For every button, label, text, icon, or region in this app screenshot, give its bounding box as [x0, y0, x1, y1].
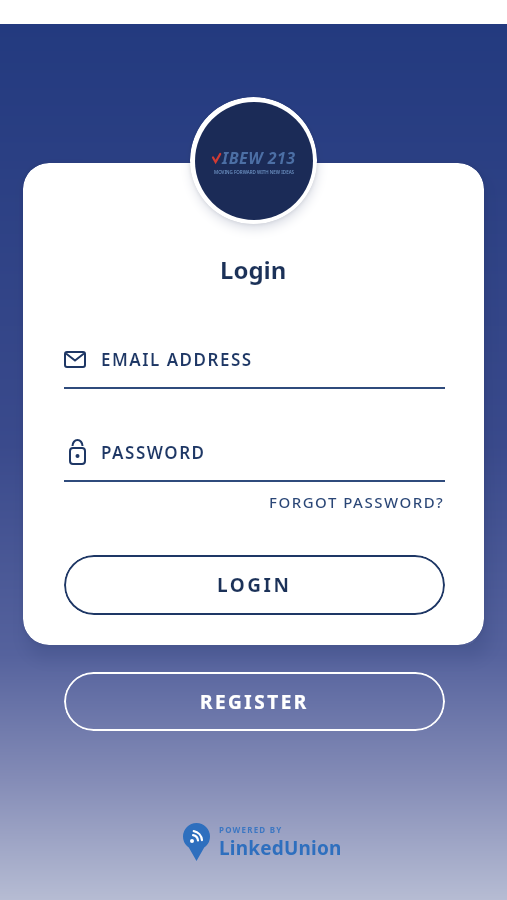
staticText: LinkedUnion [219, 835, 342, 861]
staticText: MOVING FORWARD WITH NEW IDEAS [214, 169, 295, 175]
staticText: IBEW 213 [222, 147, 296, 169]
staticText: LOGIN [217, 572, 292, 598]
staticText: Login [220, 253, 287, 286]
button[interactable]: FORGOT PASSWORD? [269, 492, 445, 512]
staticText: REGISTER [200, 689, 309, 715]
staticText: EMAIL ADDRESS [101, 348, 253, 371]
button[interactable]: POWERED BY [183, 823, 342, 861]
button[interactable]: PASSWORD [64, 437, 445, 467]
button[interactable]: EMAIL ADDRESS [64, 344, 445, 374]
button[interactable]: LOGIN [64, 555, 445, 615]
staticText: POWERED BY [219, 824, 283, 835]
staticText: PASSWORD [101, 441, 206, 464]
button[interactable]: REGISTER [64, 672, 445, 731]
